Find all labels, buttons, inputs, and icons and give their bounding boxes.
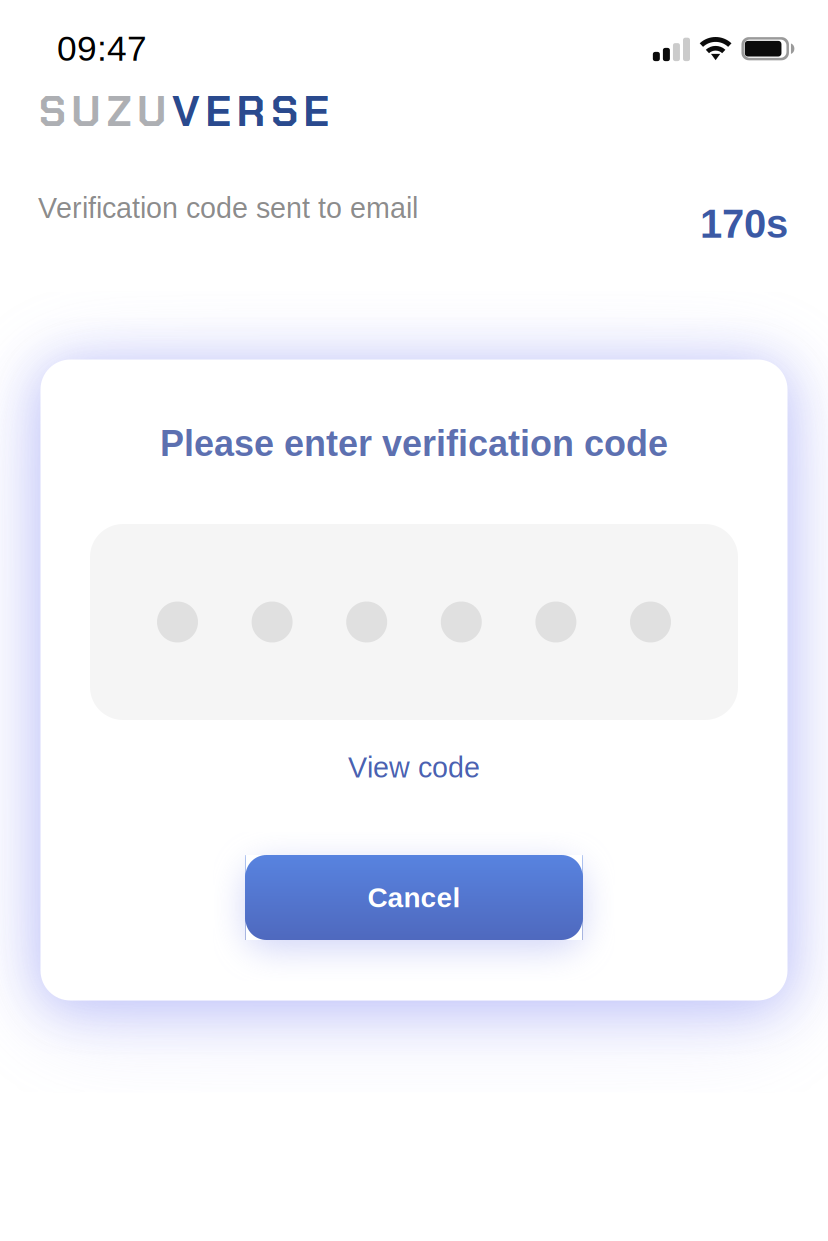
staticText: 170s: [700, 202, 788, 246]
staticText: U: [71, 84, 101, 139]
button[interactable]: Cancel: [245, 855, 582, 940]
staticText: S: [271, 84, 298, 139]
staticText: 09:47: [57, 29, 147, 68]
staticText: Please enter verification code: [160, 423, 668, 464]
staticText: V: [172, 84, 200, 139]
staticText: U: [137, 84, 167, 139]
staticText: Z: [106, 84, 131, 139]
staticText: R: [237, 84, 266, 139]
staticText: S: [39, 84, 66, 139]
staticText: Cancel: [367, 882, 460, 913]
staticText: E: [205, 84, 231, 139]
staticText: View code: [348, 751, 480, 783]
staticText: Verification code sent to email: [38, 192, 418, 224]
button[interactable]: View code: [324, 741, 504, 793]
staticText: E: [303, 84, 329, 139]
